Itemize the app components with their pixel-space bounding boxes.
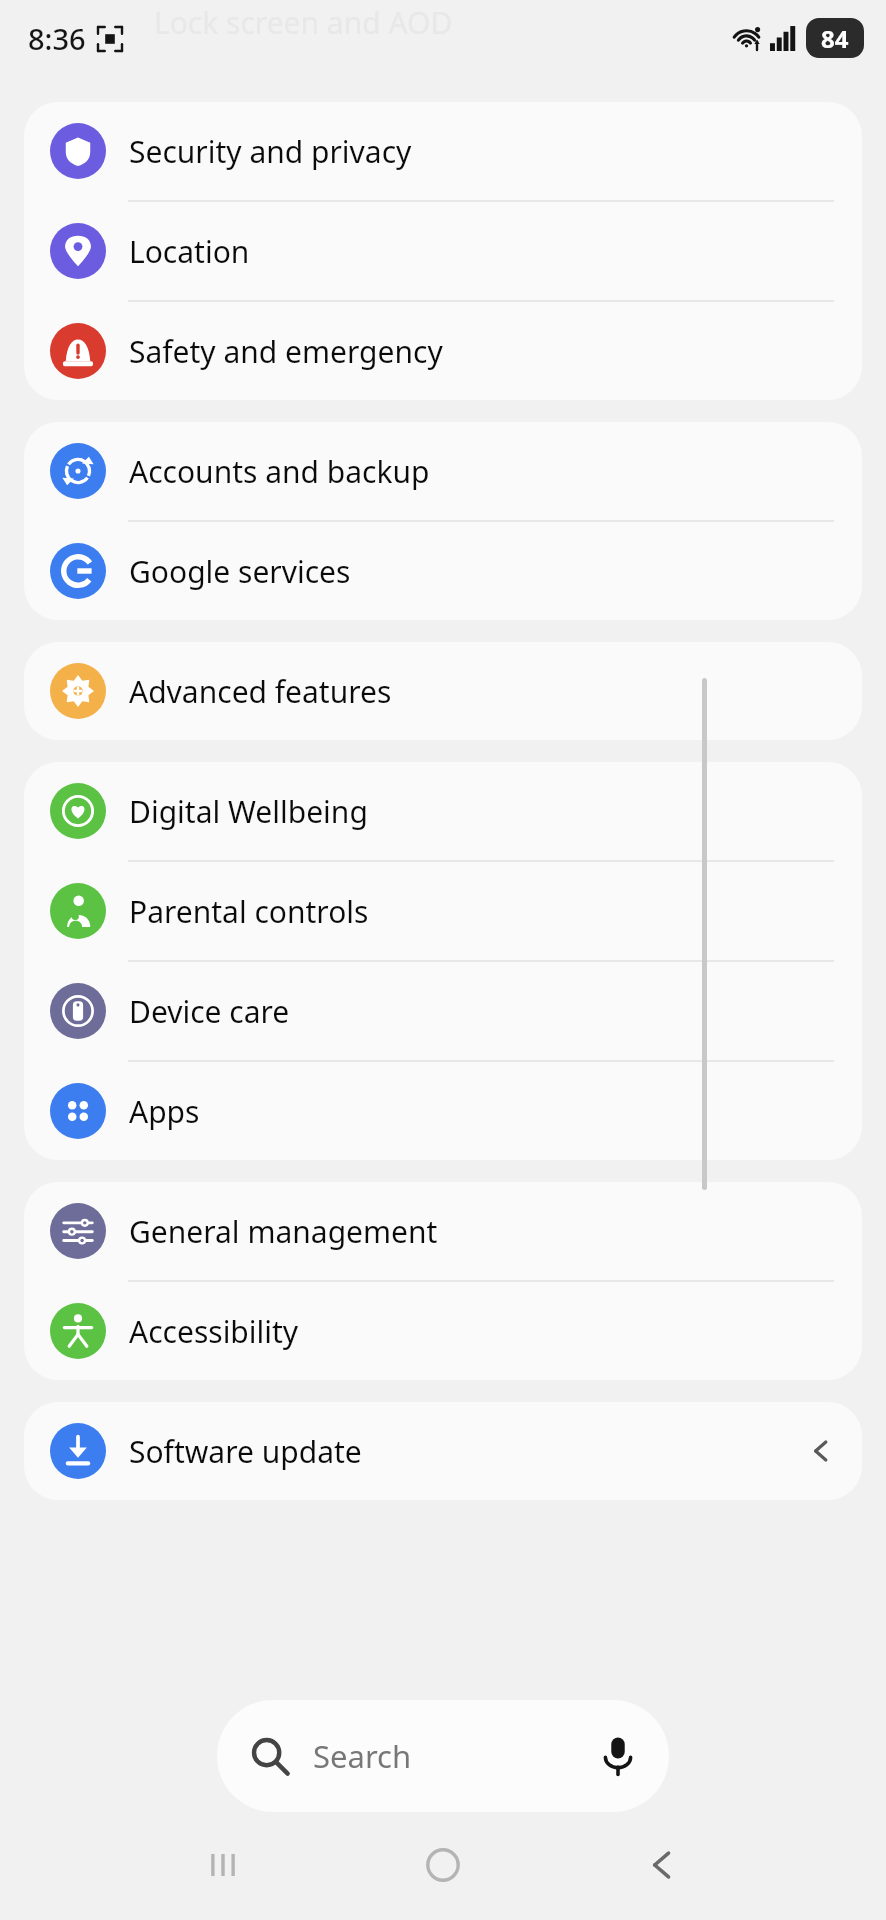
staticText: Software update [129, 1431, 362, 1472]
button[interactable]: Recents [200, 1842, 246, 1888]
staticText: Lock screen and AOD [154, 2, 453, 43]
staticText: Parental controls [129, 891, 369, 932]
staticText: Security and privacy [129, 131, 412, 172]
button[interactable]: Safety and emergency [24, 302, 862, 400]
staticText: Digital Wellbeing [129, 791, 368, 832]
staticText: Search [313, 1735, 412, 1777]
staticText: Apps [129, 1091, 200, 1132]
button[interactable]: Search [217, 1700, 669, 1812]
button[interactable]: Accessibility [24, 1282, 862, 1380]
staticText: Accessibility [129, 1311, 299, 1352]
staticText: Safety and emergency [129, 331, 443, 372]
button[interactable]: Apps [24, 1062, 862, 1160]
staticText: General management [129, 1211, 438, 1252]
button[interactable]: Location [24, 202, 862, 300]
button[interactable]: Software update [24, 1402, 862, 1500]
button[interactable]: Digital Wellbeing [24, 762, 862, 860]
button[interactable]: Parental controls [24, 862, 862, 960]
button[interactable]: Google services [24, 522, 862, 620]
button[interactable]: Accounts and backup [24, 422, 862, 520]
button[interactable]: Device care [24, 962, 862, 1060]
button[interactable]: Back [640, 1842, 686, 1888]
button[interactable]: Security and privacy [24, 102, 862, 200]
staticText: Advanced features [129, 671, 392, 712]
staticText: 8:36 [28, 19, 86, 58]
staticText: Location [129, 231, 250, 272]
button[interactable]: Voice search [597, 1735, 639, 1777]
staticText: Accounts and backup [129, 451, 430, 492]
staticText: Device care [129, 991, 290, 1032]
button[interactable]: Advanced features [24, 642, 862, 740]
button[interactable]: General management [24, 1182, 862, 1280]
staticText: Google services [129, 551, 351, 592]
staticText: 84 [821, 22, 849, 55]
button[interactable]: Home [420, 1842, 466, 1888]
